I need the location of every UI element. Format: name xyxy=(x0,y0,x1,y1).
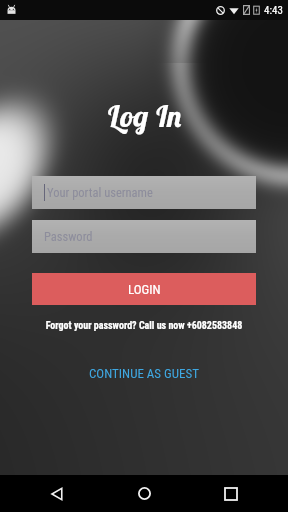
button[interactable]: Password xyxy=(32,220,256,253)
button[interactable]: Recent apps xyxy=(201,475,261,512)
button[interactable]: LOGIN xyxy=(32,273,256,305)
staticText: Your portal username xyxy=(47,185,153,200)
staticText: LOGIN xyxy=(128,282,161,297)
button[interactable]: Home xyxy=(114,475,174,512)
button[interactable]: CONTINUE AS GUEST xyxy=(73,360,216,387)
button[interactable]: Back xyxy=(27,475,87,512)
staticText: CONTINUE AS GUEST xyxy=(89,366,200,381)
staticText: 4:43 xyxy=(264,4,283,17)
button[interactable]: Your portal username xyxy=(32,176,256,209)
staticText: Password xyxy=(44,229,93,244)
staticText: Forgot your password? Call us now +60825… xyxy=(32,320,256,332)
staticText: Log In xyxy=(106,97,183,135)
